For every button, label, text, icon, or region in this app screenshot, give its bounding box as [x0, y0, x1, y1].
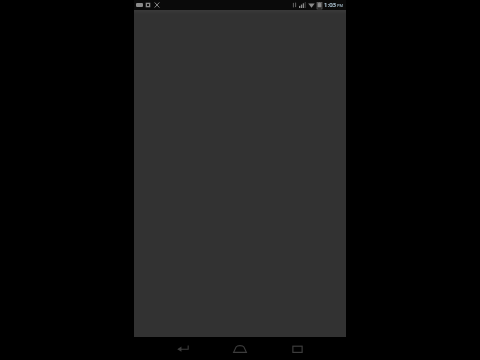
staticText: 1:03 — [324, 1, 336, 9]
button[interactable]: Recent apps — [277, 337, 317, 360]
button[interactable]: Back — [163, 337, 203, 360]
button[interactable]: Home — [220, 337, 260, 360]
staticText: PM — [337, 3, 344, 8]
